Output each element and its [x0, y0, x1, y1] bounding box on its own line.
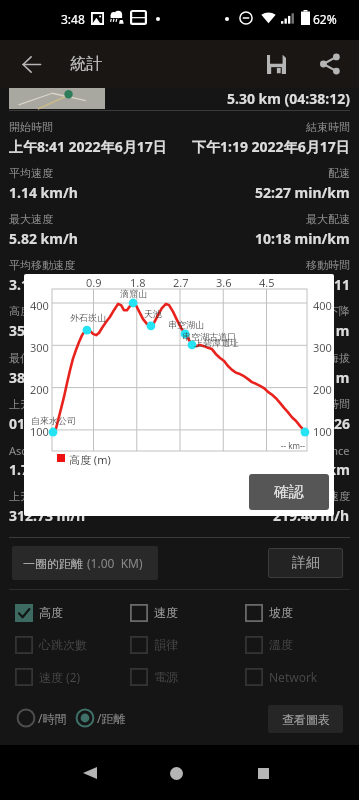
staticText: 200 — [30, 382, 49, 397]
staticText: 心跳次數 — [39, 637, 87, 652]
staticText: 坡度 — [269, 605, 293, 620]
staticText: Distance — [305, 443, 350, 458]
staticText: (1.00 KM) — [87, 555, 143, 571]
staticText: 300 — [313, 340, 332, 355]
button[interactable]: 查看圖表 — [268, 705, 343, 733]
staticText: 查看圖表 — [282, 712, 330, 727]
staticText: 海拔 — [328, 351, 350, 365]
staticText: 5.30 km (04:38:12) — [227, 89, 350, 108]
staticText: 1.8 — [130, 275, 146, 290]
staticText: 3.11 km/h — [9, 275, 78, 294]
staticText: 1.14 km/h — [9, 183, 78, 202]
staticText: 下降速度 — [306, 489, 350, 503]
staticText: 平均移動速度 — [9, 258, 75, 272]
staticText: 配速 — [328, 166, 350, 180]
button[interactable]: 速度 — [130, 603, 178, 622]
staticText: 62% — [313, 11, 337, 27]
button[interactable]: 一圈的距離 — [12, 546, 158, 580]
staticText: 移動時間 — [306, 258, 350, 272]
staticText: 電源 — [154, 669, 178, 684]
staticText: 3:48 — [61, 11, 85, 27]
staticText: 5.82 km/h — [9, 229, 78, 248]
staticText: 01:42:11 — [294, 275, 350, 294]
button[interactable]: 坡度 — [245, 603, 293, 622]
button[interactable]: Recents — [241, 751, 285, 795]
staticText: 52:27 min/km — [255, 183, 350, 202]
button[interactable]: /時間 — [16, 708, 67, 728]
staticText: 最大速度 — [9, 212, 53, 226]
staticText: 10:18 min/km — [255, 229, 350, 248]
staticText: 詳細 — [292, 554, 320, 572]
staticText: 上升時間 — [9, 397, 53, 411]
staticText: -- km-- — [281, 440, 306, 451]
button[interactable]: Back — [7, 40, 55, 88]
button[interactable]: 韻律 — [130, 635, 178, 654]
staticText: 最大配速 — [306, 212, 350, 226]
staticText: 外石崁山 — [70, 312, 106, 323]
button[interactable]: 確認 — [249, 474, 329, 510]
staticText: 韻律 — [154, 637, 178, 652]
staticText: 2.7 — [173, 275, 189, 290]
staticText: 開始時間 — [9, 120, 53, 134]
staticText: 統計 — [70, 54, 102, 74]
staticText: 219.40 m/h — [273, 506, 350, 525]
staticText: 下午1:19 2022年6月17日 — [192, 137, 350, 156]
staticText: 1105 m — [300, 321, 350, 340]
staticText: 溫度 — [269, 637, 293, 652]
button[interactable]: 詳細 — [268, 548, 343, 578]
staticText: 串空湖山 — [168, 319, 204, 330]
staticText: /時間 — [38, 710, 67, 726]
staticText: 38 m — [9, 368, 43, 387]
staticText: 100 — [30, 424, 49, 439]
staticText: 平均速度 — [9, 166, 53, 180]
staticText: 400 — [30, 298, 49, 313]
staticText: 一圈的距離 — [23, 555, 87, 571]
staticText: 滴窟山 — [120, 288, 147, 299]
button[interactable]: Back — [68, 751, 112, 795]
button[interactable]: Save — [252, 40, 300, 88]
button[interactable]: Network — [245, 667, 318, 686]
button[interactable]: Share — [306, 40, 354, 88]
staticText: 高度 (m) — [69, 452, 111, 467]
staticText: 3.60 km — [296, 460, 350, 479]
staticText: 412 m — [308, 368, 350, 387]
staticText: 4.5 — [259, 275, 275, 290]
staticText: 最低 — [9, 351, 31, 365]
button[interactable]: 溫度 — [245, 635, 293, 654]
staticText: 高度 — [39, 605, 63, 620]
staticText: 200 — [313, 382, 332, 397]
staticText: 312.73 m/h — [9, 506, 86, 525]
staticText: 下降 — [328, 304, 350, 318]
staticText: 上碧潭遺址 — [194, 337, 239, 348]
button[interactable]: Home — [154, 751, 198, 795]
staticText: 上午8:41 2022年6月17日 — [9, 137, 167, 156]
staticText: Network — [269, 669, 318, 685]
button[interactable]: 電源 — [130, 667, 178, 686]
staticText: 串空湖古道口 — [182, 331, 236, 342]
staticText: 速度 (2) — [39, 669, 81, 685]
staticText: 400 — [313, 298, 332, 313]
button[interactable]: /距離 — [75, 708, 126, 728]
staticText: 確認 — [274, 483, 304, 502]
staticText: 0.9 — [86, 275, 102, 290]
staticText: 下降時間 — [306, 397, 350, 411]
staticText: 結束時間 — [306, 120, 350, 134]
staticText: 100 — [313, 424, 332, 439]
staticText: /距離 — [97, 710, 126, 726]
staticText: 1.70 km — [9, 460, 63, 479]
button[interactable]: 速度 (2) — [15, 667, 81, 686]
button[interactable]: 心跳次數 — [15, 635, 87, 654]
staticText: 300 — [30, 340, 49, 355]
staticText: 3.6 — [216, 275, 232, 290]
staticText: 速度 — [154, 605, 178, 620]
staticText: 01:26:26 — [294, 414, 350, 433]
staticText: 01:58:22 — [9, 414, 65, 433]
staticText: 355 m — [9, 321, 51, 340]
staticText: 上升速度 — [9, 489, 53, 503]
staticText: 高度 — [9, 304, 31, 318]
staticText: Ascent — [9, 443, 44, 458]
staticText: 天池 — [144, 308, 162, 319]
button[interactable]: 高度 — [15, 603, 63, 622]
staticText: 自來水公司 — [31, 415, 76, 426]
